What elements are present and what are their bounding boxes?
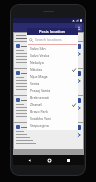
staticText: Search locations [35,37,62,42]
staticText: Zhanaš Hoděl [30,102,51,107]
staticText: Prazaj Santa [30,88,51,93]
staticText: Njus Maga Apposelli [30,74,53,79]
button[interactable]: Account [75,24,82,31]
button[interactable]: Stepuegina [27,122,78,129]
button[interactable]: Search locations [27,35,78,44]
button[interactable]: Senta [27,80,78,87]
button[interactable]: Bravo Park [27,108,78,115]
staticText: Bravo Park [30,109,48,114]
staticText: Pesis location [39,29,66,34]
button[interactable]: Salvo Veska [27,52,78,59]
staticText: Nikolas Eslenyi [30,67,51,72]
button[interactable]: Back [25,156,33,164]
button[interactable]: Zhanaš Hoděl [27,101,78,108]
staticText: Breknervati Rivat [30,95,53,100]
button[interactable]: Home [45,156,53,164]
button[interactable]: Prazaj Santa [27,87,78,94]
button[interactable]: Nikolas Eslenyi [27,66,78,73]
button[interactable]: Recent apps [64,156,72,164]
staticText: Salvo Veska [30,53,50,58]
staticText: Svatkho Yani [30,116,51,121]
staticText: Nebulya Clubolo [30,60,53,65]
staticText: Senta [30,81,40,86]
button[interactable]: Nebulya Clubolo [27,59,78,66]
button[interactable]: Njus Maga Apposelli [27,73,78,80]
button[interactable]: Breknervati Rivat [27,94,78,101]
staticText: Stepuegina [30,123,49,128]
button[interactable]: Salvo Sân [27,45,78,52]
button[interactable]: Svatkho Yani [27,115,78,122]
staticText: Salvo Sân [30,46,46,51]
